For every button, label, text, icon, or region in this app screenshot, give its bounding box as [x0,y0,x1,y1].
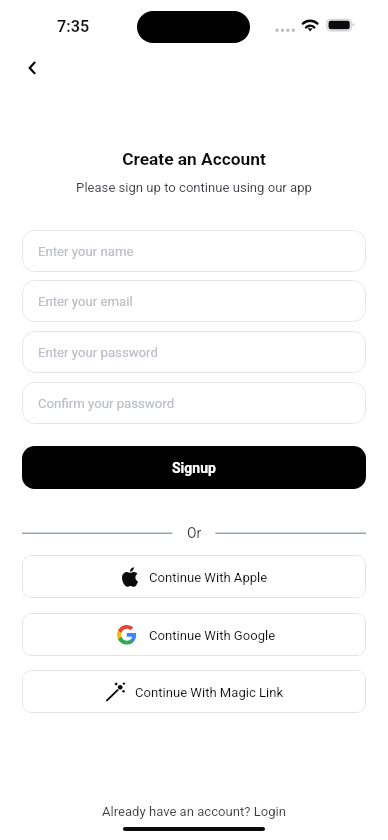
staticText: Continue With Apple [149,570,268,585]
staticText: Create an Account [122,149,266,169]
staticText: Please sign up to continue using our app [76,180,312,195]
button[interactable]: Signup [22,446,366,489]
button[interactable]: Enter your password [22,331,366,373]
button[interactable]: Continue With Google [22,613,366,656]
staticText: Confirm your password [38,396,175,411]
staticText: Continue With Google [149,628,276,643]
button[interactable]: Confirm your password [22,382,366,424]
staticText: 7:35 [57,17,90,36]
staticText: Signup [172,460,216,476]
button[interactable]: Continue With Magic Link [22,670,366,713]
button[interactable]: Enter your email [22,280,366,322]
button[interactable]: Already have an account? Login [100,800,288,823]
button[interactable]: Continue With Apple [22,555,366,598]
staticText: Enter your password [38,345,158,360]
staticText: Continue With Magic Link [135,685,284,700]
staticText: Enter your name [38,244,134,259]
button[interactable]: Back [14,50,50,86]
staticText: Or [187,525,202,541]
staticText: Already have an account? Login [102,804,286,819]
staticText: Enter your email [38,294,133,309]
button[interactable]: Enter your name [22,230,366,272]
